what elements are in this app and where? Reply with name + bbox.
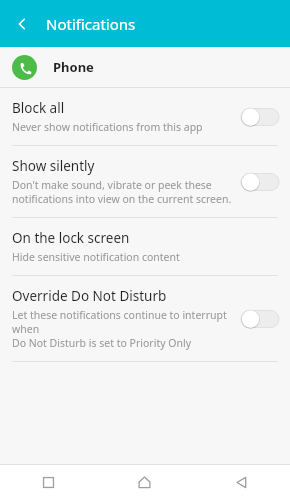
- staticText: Hide sensitive notification content: [12, 250, 180, 264]
- button[interactable]: Phone: [0, 47, 290, 87]
- button[interactable]: Show silently: [0, 146, 290, 217]
- button[interactable]: Recent apps: [0, 464, 96, 500]
- button[interactable]: Toggle: [240, 106, 280, 128]
- button[interactable]: Override Do Not Disturb: [0, 276, 290, 361]
- staticText: Block all: [12, 99, 65, 117]
- staticText: Override Do Not Disturb: [12, 287, 167, 305]
- button[interactable]: Back: [193, 464, 290, 500]
- button[interactable]: On the lock screen: [0, 218, 290, 275]
- staticText: Don't make sound, vibrate or peek these …: [12, 178, 232, 206]
- staticText: On the lock screen: [12, 229, 130, 247]
- button[interactable]: Block all: [0, 88, 290, 145]
- button[interactable]: Toggle: [240, 171, 280, 193]
- button[interactable]: Back: [6, 8, 38, 40]
- staticText: Never show notifications from this app: [12, 120, 203, 134]
- button[interactable]: Home: [96, 464, 193, 500]
- staticText: Phone: [53, 58, 94, 76]
- staticText: Let these notifications continue to inte…: [12, 308, 232, 350]
- staticText: Notifications: [46, 14, 136, 34]
- staticText: Show silently: [12, 157, 95, 175]
- button[interactable]: Toggle: [240, 308, 280, 330]
